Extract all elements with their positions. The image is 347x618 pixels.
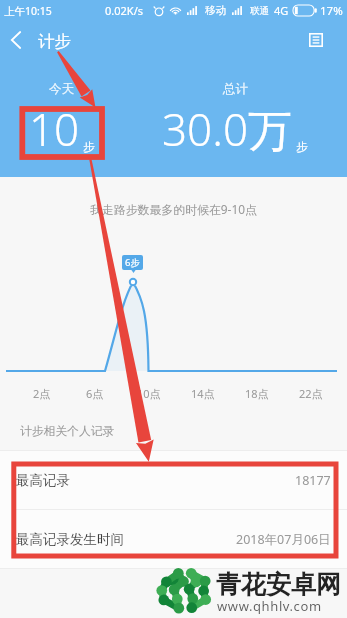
staticText: 总计	[223, 81, 248, 97]
staticText: 18177	[295, 472, 331, 489]
staticText: 10	[29, 99, 80, 159]
staticText: 移动	[205, 4, 226, 17]
button[interactable]: 最高记录	[0, 451, 347, 509]
staticText: 最高记录	[16, 472, 70, 489]
staticText: 6点	[86, 386, 104, 401]
staticText: 30.0万	[162, 99, 293, 159]
button[interactable]: Records	[298, 22, 334, 60]
staticText: 0.02K/s	[105, 3, 143, 18]
staticText: 22点	[299, 386, 323, 401]
staticText: 4G	[274, 3, 289, 18]
staticText: 联通	[250, 5, 269, 17]
staticText: 2点	[33, 386, 51, 401]
staticText: 步	[83, 140, 95, 154]
staticText: 我走路步数最多的时候在9-10点	[90, 201, 257, 217]
button[interactable]: 最高记录发生时间	[0, 510, 347, 568]
staticText: 步	[296, 140, 308, 154]
staticText: 计步	[38, 31, 71, 52]
staticText: 最高记录发生时间	[16, 531, 124, 548]
staticText: 上午10:15	[4, 4, 52, 18]
staticText: 14点	[191, 386, 215, 401]
staticText: 10点	[137, 386, 161, 401]
staticText: 6步	[125, 256, 140, 269]
staticText: 计步相关个人记录	[20, 424, 115, 439]
staticText: 18点	[245, 386, 269, 401]
staticText: www.qhhlv.com	[217, 597, 322, 615]
staticText: 2018年07月06日	[236, 531, 331, 548]
staticText: 今天	[49, 81, 74, 97]
button[interactable]: Back	[0, 22, 34, 60]
staticText: 17%	[320, 3, 343, 19]
staticText: 青花安卓网	[216, 569, 341, 600]
